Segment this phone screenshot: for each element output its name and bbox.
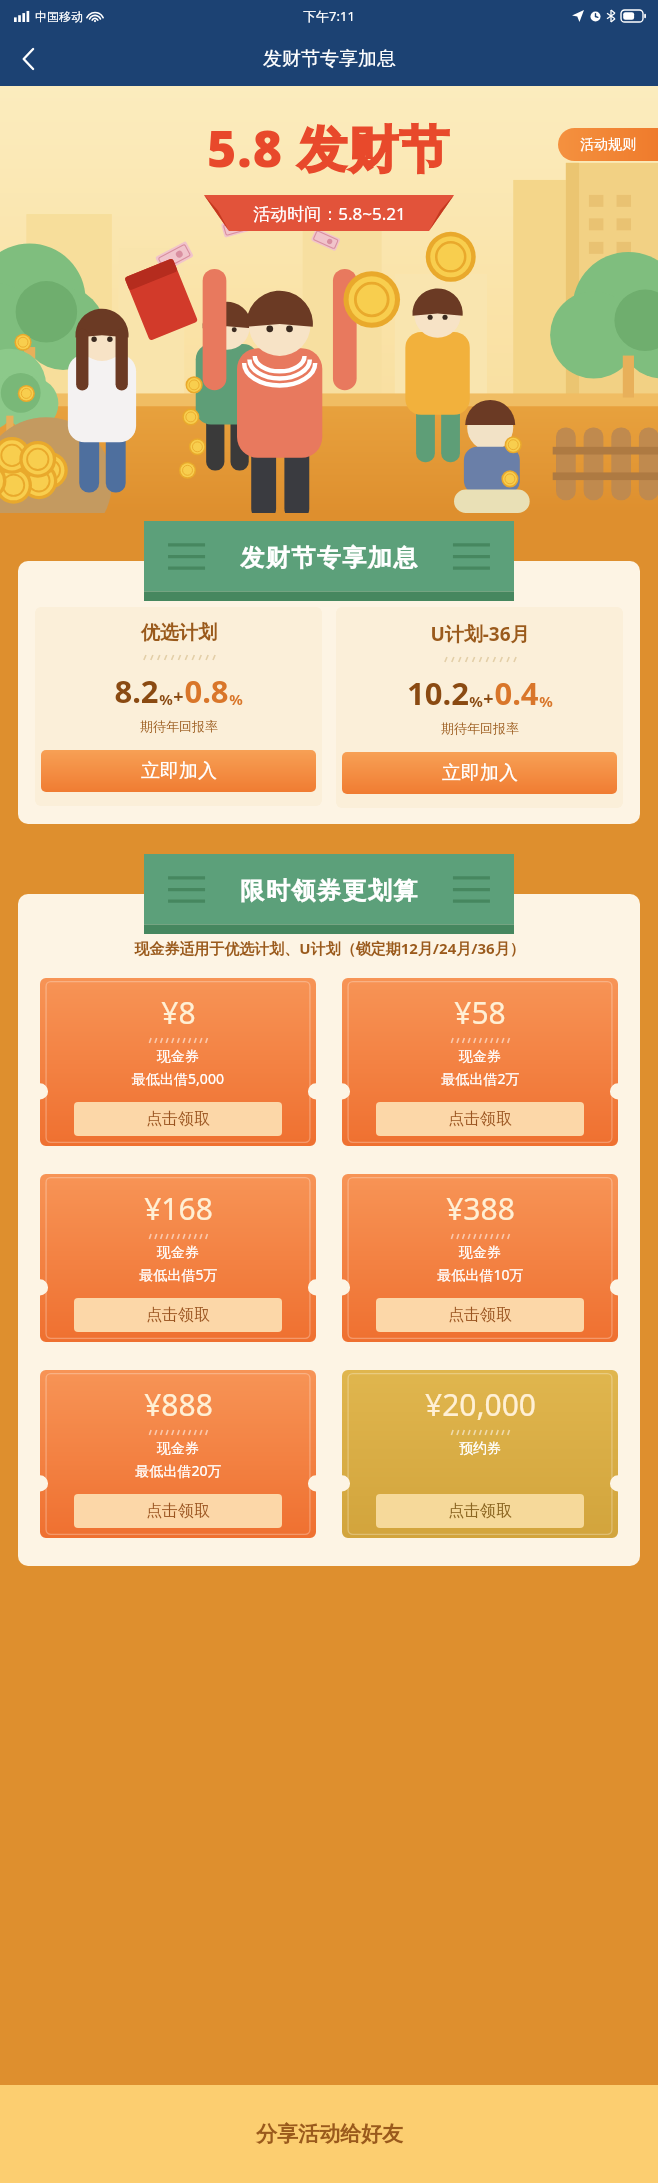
staticText: 最低出借10万 [437, 1265, 524, 1284]
button[interactable]: U计划-36月 [336, 607, 623, 808]
staticText: 限时领券更划算 [240, 876, 419, 906]
button[interactable]: 优选计划 [35, 607, 322, 806]
staticText: 现金券 [459, 1048, 501, 1066]
staticText: 下午7:11 [303, 7, 355, 25]
staticText: 点击领取 [146, 1109, 210, 1129]
button[interactable]: ¥8 [40, 978, 316, 1146]
staticText: 8.2 [114, 670, 159, 712]
button[interactable]: ¥58 [342, 978, 618, 1146]
button[interactable]: ¥20,000 [342, 1370, 618, 1538]
staticText: ¥388 [446, 1188, 515, 1229]
button[interactable]: ¥888 [40, 1370, 316, 1538]
staticText: 点击领取 [146, 1305, 210, 1325]
staticText: 0.4 [494, 672, 539, 714]
button[interactable]: Back [0, 32, 56, 86]
staticText: ¥20,000 [425, 1384, 536, 1425]
staticText: % [539, 691, 553, 711]
button[interactable]: 点击领取 [376, 1494, 584, 1528]
staticText: 点击领取 [448, 1109, 512, 1129]
staticText: ¥168 [144, 1188, 213, 1229]
button[interactable]: 立即加入 [41, 750, 316, 792]
button[interactable]: 点击领取 [74, 1102, 282, 1136]
staticText: 最低出借2万 [441, 1069, 520, 1088]
staticText: 现金券 [157, 1440, 199, 1458]
button[interactable]: 点击领取 [74, 1298, 282, 1332]
staticText: + [173, 684, 184, 709]
staticText: 点击领取 [146, 1501, 210, 1521]
staticText: 现金券 [157, 1244, 199, 1262]
staticText: 立即加入 [442, 761, 518, 785]
staticText: 10.2 [407, 672, 469, 714]
staticText: 现金券 [157, 1048, 199, 1066]
staticText: 预约券 [459, 1440, 501, 1458]
staticText: 发财节专享加息 [263, 47, 396, 71]
staticText: ¥8 [161, 992, 196, 1033]
button[interactable]: 点击领取 [376, 1298, 584, 1332]
staticText: 期待年回报率 [140, 718, 218, 734]
staticText: % [159, 689, 173, 709]
staticText: + [483, 686, 494, 711]
staticText: 发财节专享加息 [240, 543, 419, 573]
staticText: 最低出借5,000 [132, 1069, 224, 1088]
staticText: 活动规则 [580, 136, 636, 154]
staticText: 期待年回报率 [441, 720, 519, 736]
staticText: 优选计划 [141, 621, 217, 645]
button[interactable]: ¥388 [342, 1174, 618, 1342]
staticText: 立即加入 [141, 759, 217, 783]
staticText: 点击领取 [448, 1305, 512, 1325]
button[interactable]: ¥168 [40, 1174, 316, 1342]
button[interactable]: 点击领取 [376, 1102, 584, 1136]
staticText: ¥58 [454, 992, 506, 1033]
staticText: 点击领取 [448, 1501, 512, 1521]
staticText: 活动时间：5.8~5.21 [253, 202, 406, 225]
staticText: 最低出借20万 [135, 1461, 222, 1480]
staticText: 现金券适用于优选计划、U计划（锁定期12月/24月/36月） [134, 938, 525, 958]
staticText: % [469, 691, 483, 711]
staticText: % [229, 689, 243, 709]
button[interactable]: 分享活动给好友 [0, 2085, 658, 2183]
staticText: 5.8 发财节 [207, 114, 451, 182]
staticText: 分享活动给好友 [256, 2121, 403, 2147]
staticText: 最低出借5万 [139, 1265, 218, 1284]
staticText: 中国移动 [35, 9, 83, 24]
button[interactable]: 立即加入 [342, 752, 617, 794]
staticText: 0.8 [184, 670, 229, 712]
staticText: U计划-36月 [430, 621, 530, 647]
staticText: ¥888 [144, 1384, 213, 1425]
button[interactable]: 点击领取 [74, 1494, 282, 1528]
button[interactable]: 活动规则 [558, 128, 658, 161]
staticText: 现金券 [459, 1244, 501, 1262]
